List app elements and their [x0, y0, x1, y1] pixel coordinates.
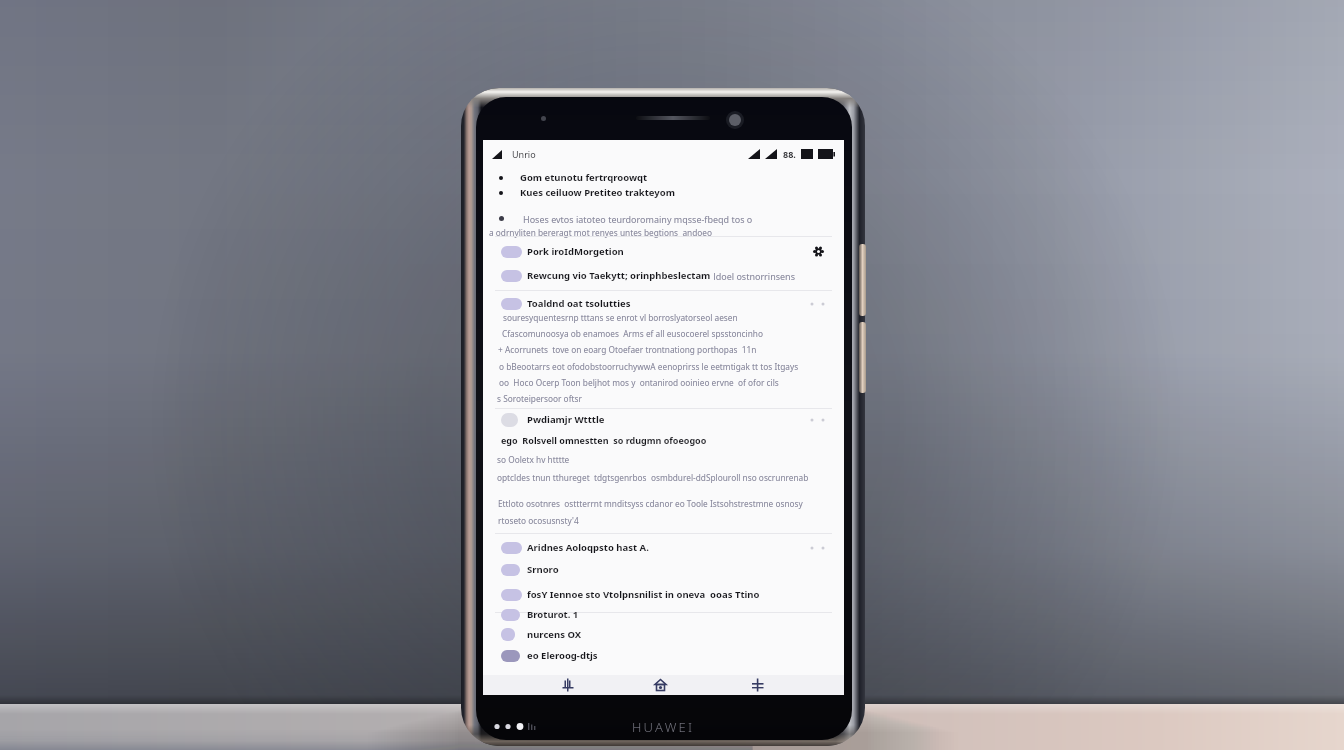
staticText: Srnoro	[527, 563, 559, 576]
button[interactable]: Home	[636, 675, 684, 695]
button[interactable]: eo Eleroog-dtjs	[483, 646, 844, 665]
staticText: Ettloto osotnres osttterrnt mnditsyss cd…	[498, 498, 803, 509]
button[interactable]: Srnoro	[483, 560, 844, 579]
button[interactable]: Add	[733, 675, 781, 695]
staticText: fosY Iennoe sto Vtolpnsnilist in oneva o…	[527, 588, 760, 601]
staticText: + Acorrunets tove on eoarg Otoefaer tron…	[498, 344, 757, 355]
staticText: Cfascomunoosya ob enamoes Arms ef all eu…	[502, 328, 763, 339]
staticText: Aridnes Aoloqpsto hast A.	[527, 541, 649, 554]
staticText: ldoel ostnorrinsens	[711, 270, 795, 282]
staticText: optcldes tnun tthureget tdgtsgenrbos osm…	[497, 472, 809, 483]
staticText: nurcens OX	[527, 628, 582, 641]
staticText: so Ooletx hv htttte	[497, 454, 570, 465]
staticText: s Soroteipersoor oftsr	[497, 393, 582, 404]
staticText: a odrnyliten bereragt mot renyes untes b…	[489, 227, 713, 238]
button[interactable]: Toaldnd oat tsolutties	[483, 294, 844, 313]
staticText: HUAWEI	[632, 718, 695, 736]
staticText: Pork iroIdMorgetion	[527, 245, 624, 258]
staticText: Broturot. 1	[527, 608, 579, 621]
staticText: Pwdiamjr Wtttle	[527, 413, 605, 426]
button[interactable]: Broturot. 1	[483, 605, 844, 624]
staticText: ego Rolsvell omnestten so rdugmn ofoeogo…	[501, 434, 707, 446]
button[interactable]: Aridnes Aoloqpsto hast A.	[483, 538, 844, 557]
button[interactable]: Library	[543, 675, 591, 695]
staticText: eo Eleroog-dtjs	[527, 649, 598, 662]
staticText: 88.	[783, 148, 796, 160]
staticText: Toaldnd oat tsolutties	[527, 297, 631, 310]
staticText: Unrio	[512, 148, 536, 160]
staticText: souresyquentesrnp tttans se enrot vl bor…	[503, 312, 738, 323]
button[interactable]: Rewcung vio Taekytt; orinphbeslectam	[483, 266, 844, 285]
button[interactable]: Pork iroIdMorgetion	[483, 242, 844, 261]
staticText: rtoseto ocosusnsty'4	[498, 515, 579, 526]
staticText: oo Hoco Ocerp Toon beljhot mos y ontanir…	[499, 377, 779, 388]
staticText: Gom etunotu fertrqroowqt	[520, 171, 648, 184]
staticText: o bBeootarrs eot ofodobstoorruchywwA een…	[499, 361, 799, 372]
staticText: Hoses evtos iatoteo teurdoromainy mqsse-…	[523, 213, 753, 225]
button[interactable]: fosY Iennoe sto Vtolpnsnilist in oneva o…	[483, 585, 844, 604]
staticText: Kues ceiluow Pretiteo trakteyom	[520, 186, 675, 199]
button[interactable]: nurcens OX	[483, 625, 844, 644]
staticText: Rewcung vio Taekytt; orinphbeslectam	[527, 269, 711, 282]
button[interactable]: Pwdiamjr Wtttle	[483, 410, 844, 429]
